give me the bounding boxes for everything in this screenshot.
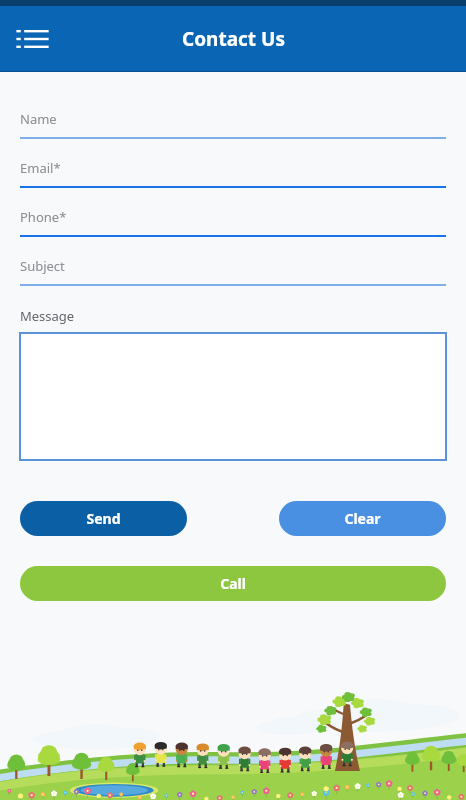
button[interactable]: Phone*: [20, 208, 446, 237]
button[interactable]: Email*: [20, 159, 446, 188]
button[interactable]: Name: [20, 110, 446, 139]
staticText: Send: [86, 509, 121, 528]
staticText: Contact Us: [182, 26, 285, 52]
button[interactable]: Send: [20, 501, 187, 536]
button[interactable]: Call: [20, 566, 446, 601]
staticText: Call: [220, 574, 246, 593]
button[interactable]: Open navigation menu: [8, 15, 56, 63]
button[interactable]: [20, 333, 446, 460]
staticText: Email*: [20, 159, 61, 177]
staticText: Message: [20, 307, 75, 325]
staticText: Name: [20, 110, 57, 128]
staticText: Phone*: [20, 208, 67, 226]
button[interactable]: Subject: [20, 257, 446, 286]
button[interactable]: Clear: [279, 501, 446, 536]
staticText: Subject: [20, 257, 65, 275]
staticText: Clear: [344, 509, 381, 528]
